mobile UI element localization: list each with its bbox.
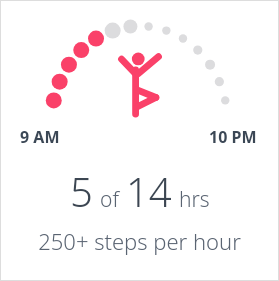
staticText: of (100, 185, 119, 214)
staticText: hrs (179, 185, 210, 214)
staticText: 5 (70, 164, 93, 218)
staticText: 250+ steps per hour (0, 226, 279, 256)
button[interactable]: Activity figure (0, 0, 279, 281)
staticText: 10 PM (209, 126, 257, 148)
staticText: 14 (126, 164, 172, 218)
other: Activity figure (118, 50, 162, 116)
staticText: 9 AM (20, 126, 60, 148)
